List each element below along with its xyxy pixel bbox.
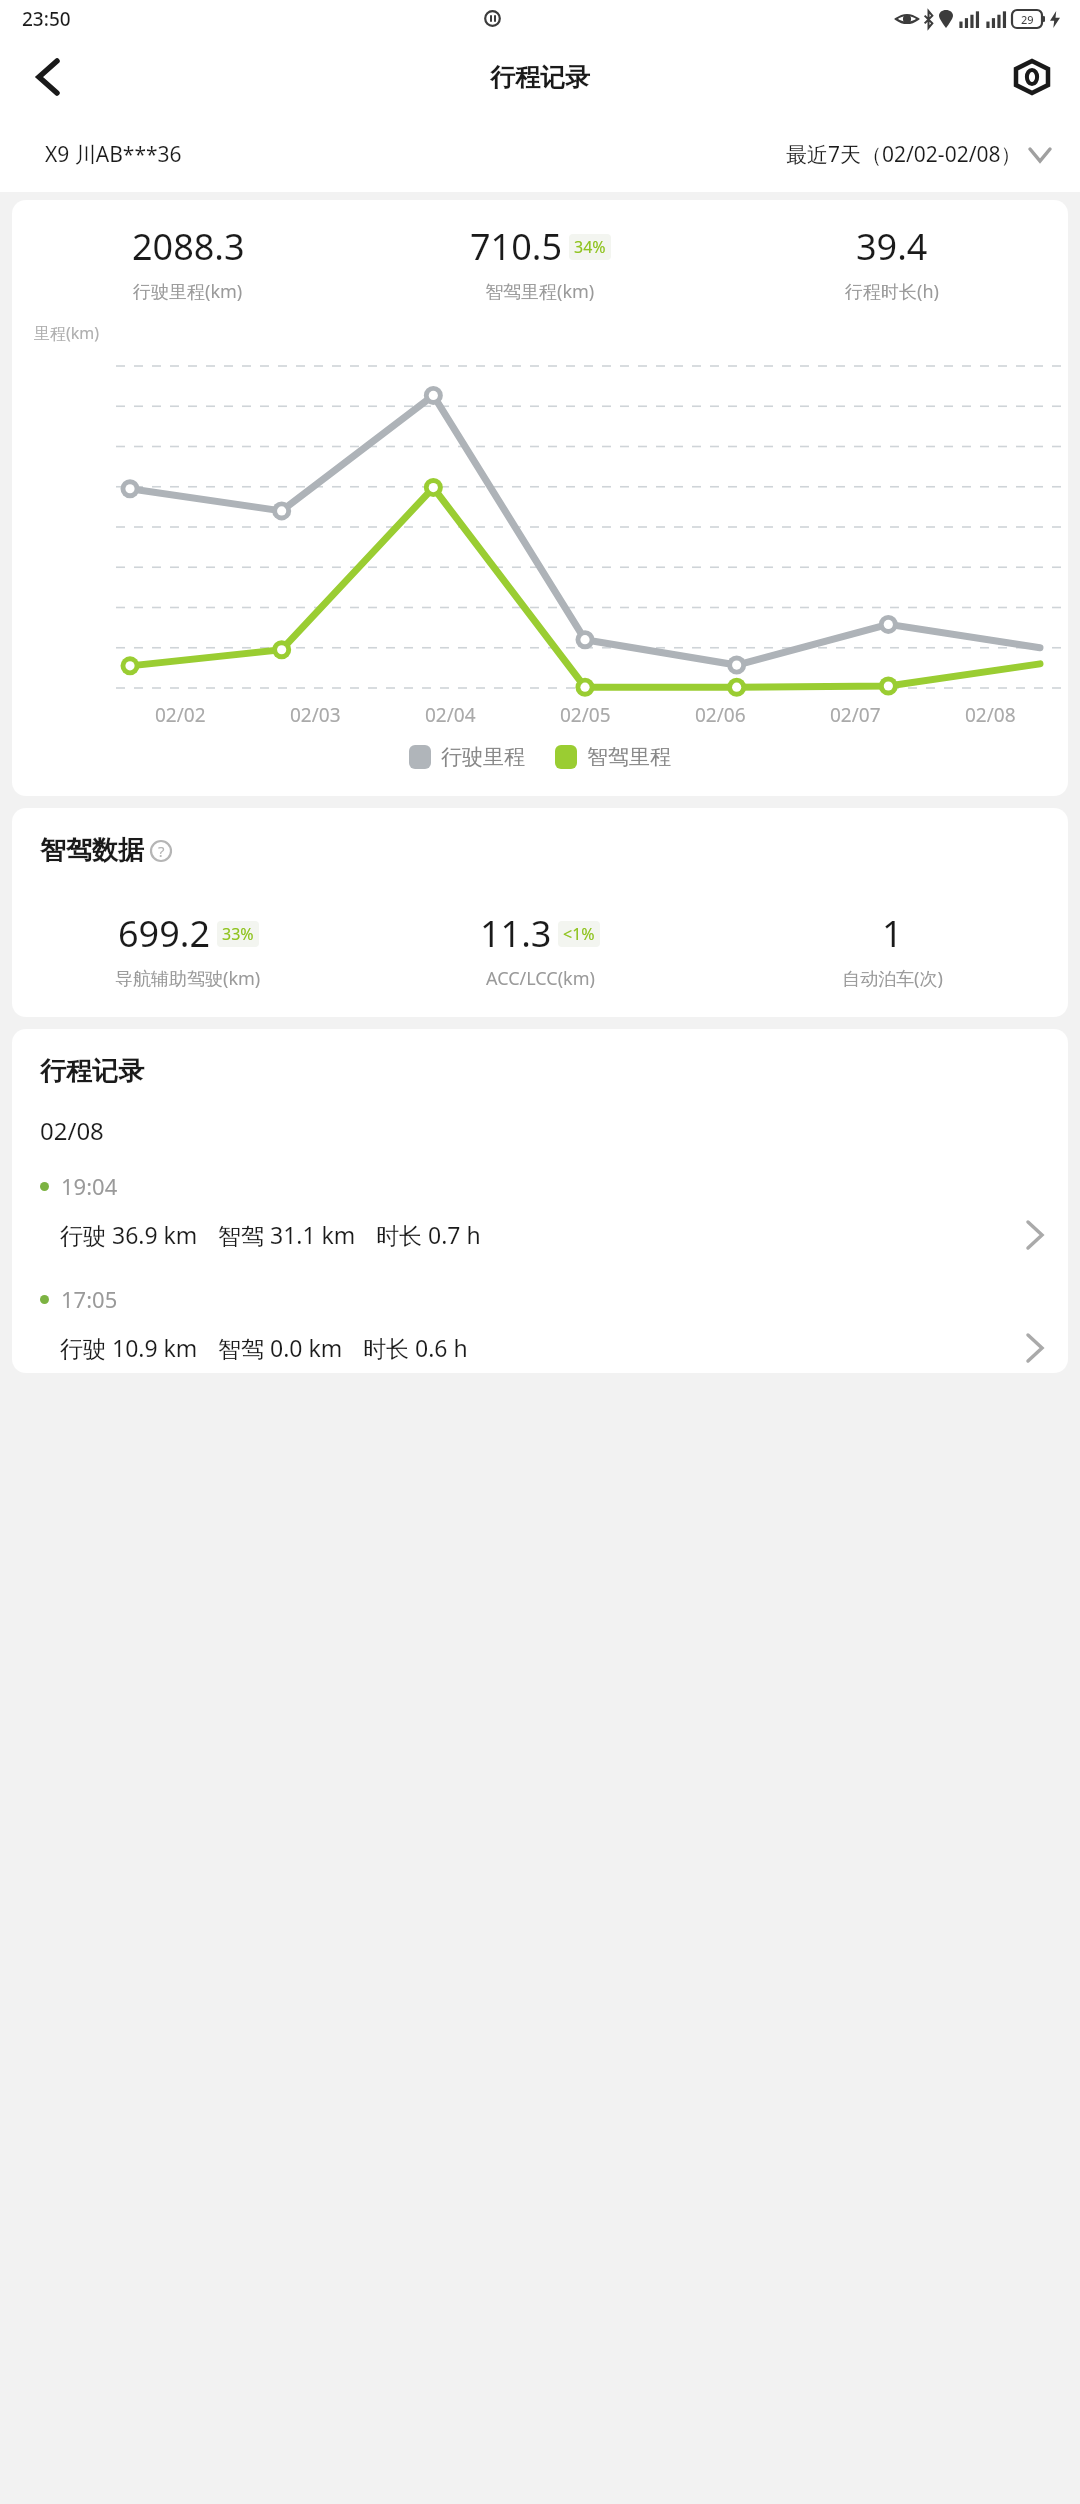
staticText: 行程记录 <box>490 62 590 93</box>
staticText: ? <box>158 841 165 861</box>
staticText: 02/04 <box>425 702 476 728</box>
staticText: 29 <box>1021 12 1034 27</box>
staticText: 最近7天（02/02-02/08） <box>786 140 1022 169</box>
staticText: 17:05 <box>61 1284 118 1314</box>
staticText: 智驾 31.1 km <box>218 1219 356 1250</box>
staticText: 智驾里程 <box>587 744 671 770</box>
staticText: 行程时长(h) <box>845 279 939 304</box>
staticText: 34% <box>574 236 606 258</box>
staticText: 1 <box>882 909 903 958</box>
button[interactable]: 17:05 <box>12 1284 1068 1363</box>
button[interactable]: 699.2 <box>12 909 364 991</box>
staticText: 智驾数据 <box>40 834 144 867</box>
button[interactable]: 最近7天（02/02-02/08） <box>786 140 1050 169</box>
staticText: 02/05 <box>560 702 611 728</box>
staticText: 行驶里程(km) <box>133 279 243 304</box>
button[interactable]: 返回 <box>18 47 78 107</box>
button[interactable]: 说明 <box>148 838 174 864</box>
staticText: 行程记录 <box>40 1055 144 1088</box>
staticText: 行驶里程 <box>441 744 525 770</box>
staticText: 39.4 <box>856 222 928 271</box>
button[interactable]: 1 <box>716 909 1068 991</box>
staticText: 智驾 0.0 km <box>218 1332 343 1363</box>
staticText: 02/07 <box>830 702 881 728</box>
staticText: X9 川AB***36 <box>45 140 182 169</box>
staticText: 里程(km) <box>34 322 100 344</box>
staticText: 2088.3 <box>132 222 245 271</box>
staticText: 02/02 <box>155 702 206 728</box>
staticText: 23:50 <box>22 6 71 32</box>
button[interactable]: 11.3 <box>364 909 716 991</box>
button[interactable]: 19:04 <box>12 1171 1068 1250</box>
staticText: 11.3 <box>480 909 552 958</box>
button[interactable]: 行驶里程 <box>409 744 525 770</box>
staticText: 行驶 36.9 km <box>60 1219 198 1250</box>
staticText: 699.2 <box>118 909 211 958</box>
staticText: 时长 0.7 h <box>376 1219 481 1250</box>
staticText: 智驾里程(km) <box>485 279 595 304</box>
staticText: <1% <box>563 923 595 945</box>
button[interactable]: 710.5 <box>364 222 716 304</box>
button[interactable]: 智驾里程 <box>555 744 671 770</box>
staticText: 19:04 <box>61 1171 118 1201</box>
staticText: 导航辅助驾驶(km) <box>115 966 261 991</box>
button[interactable]: 39.4 <box>716 222 1068 304</box>
staticText: 710.5 <box>470 222 563 271</box>
button[interactable]: 设置 <box>1002 47 1062 107</box>
staticText: ACC/LCC(km) <box>486 966 595 991</box>
staticText: 行驶 10.9 km <box>60 1332 198 1363</box>
staticText: 02/06 <box>695 702 746 728</box>
button[interactable]: 2088.3 <box>12 222 364 304</box>
staticText: 时长 0.6 h <box>363 1332 468 1363</box>
staticText: 自动泊车(次) <box>842 966 943 991</box>
staticText: 02/08 <box>965 702 1016 728</box>
staticText: 02/08 <box>40 1114 104 1147</box>
staticText: 02/03 <box>290 702 341 728</box>
staticText: 33% <box>222 923 254 945</box>
